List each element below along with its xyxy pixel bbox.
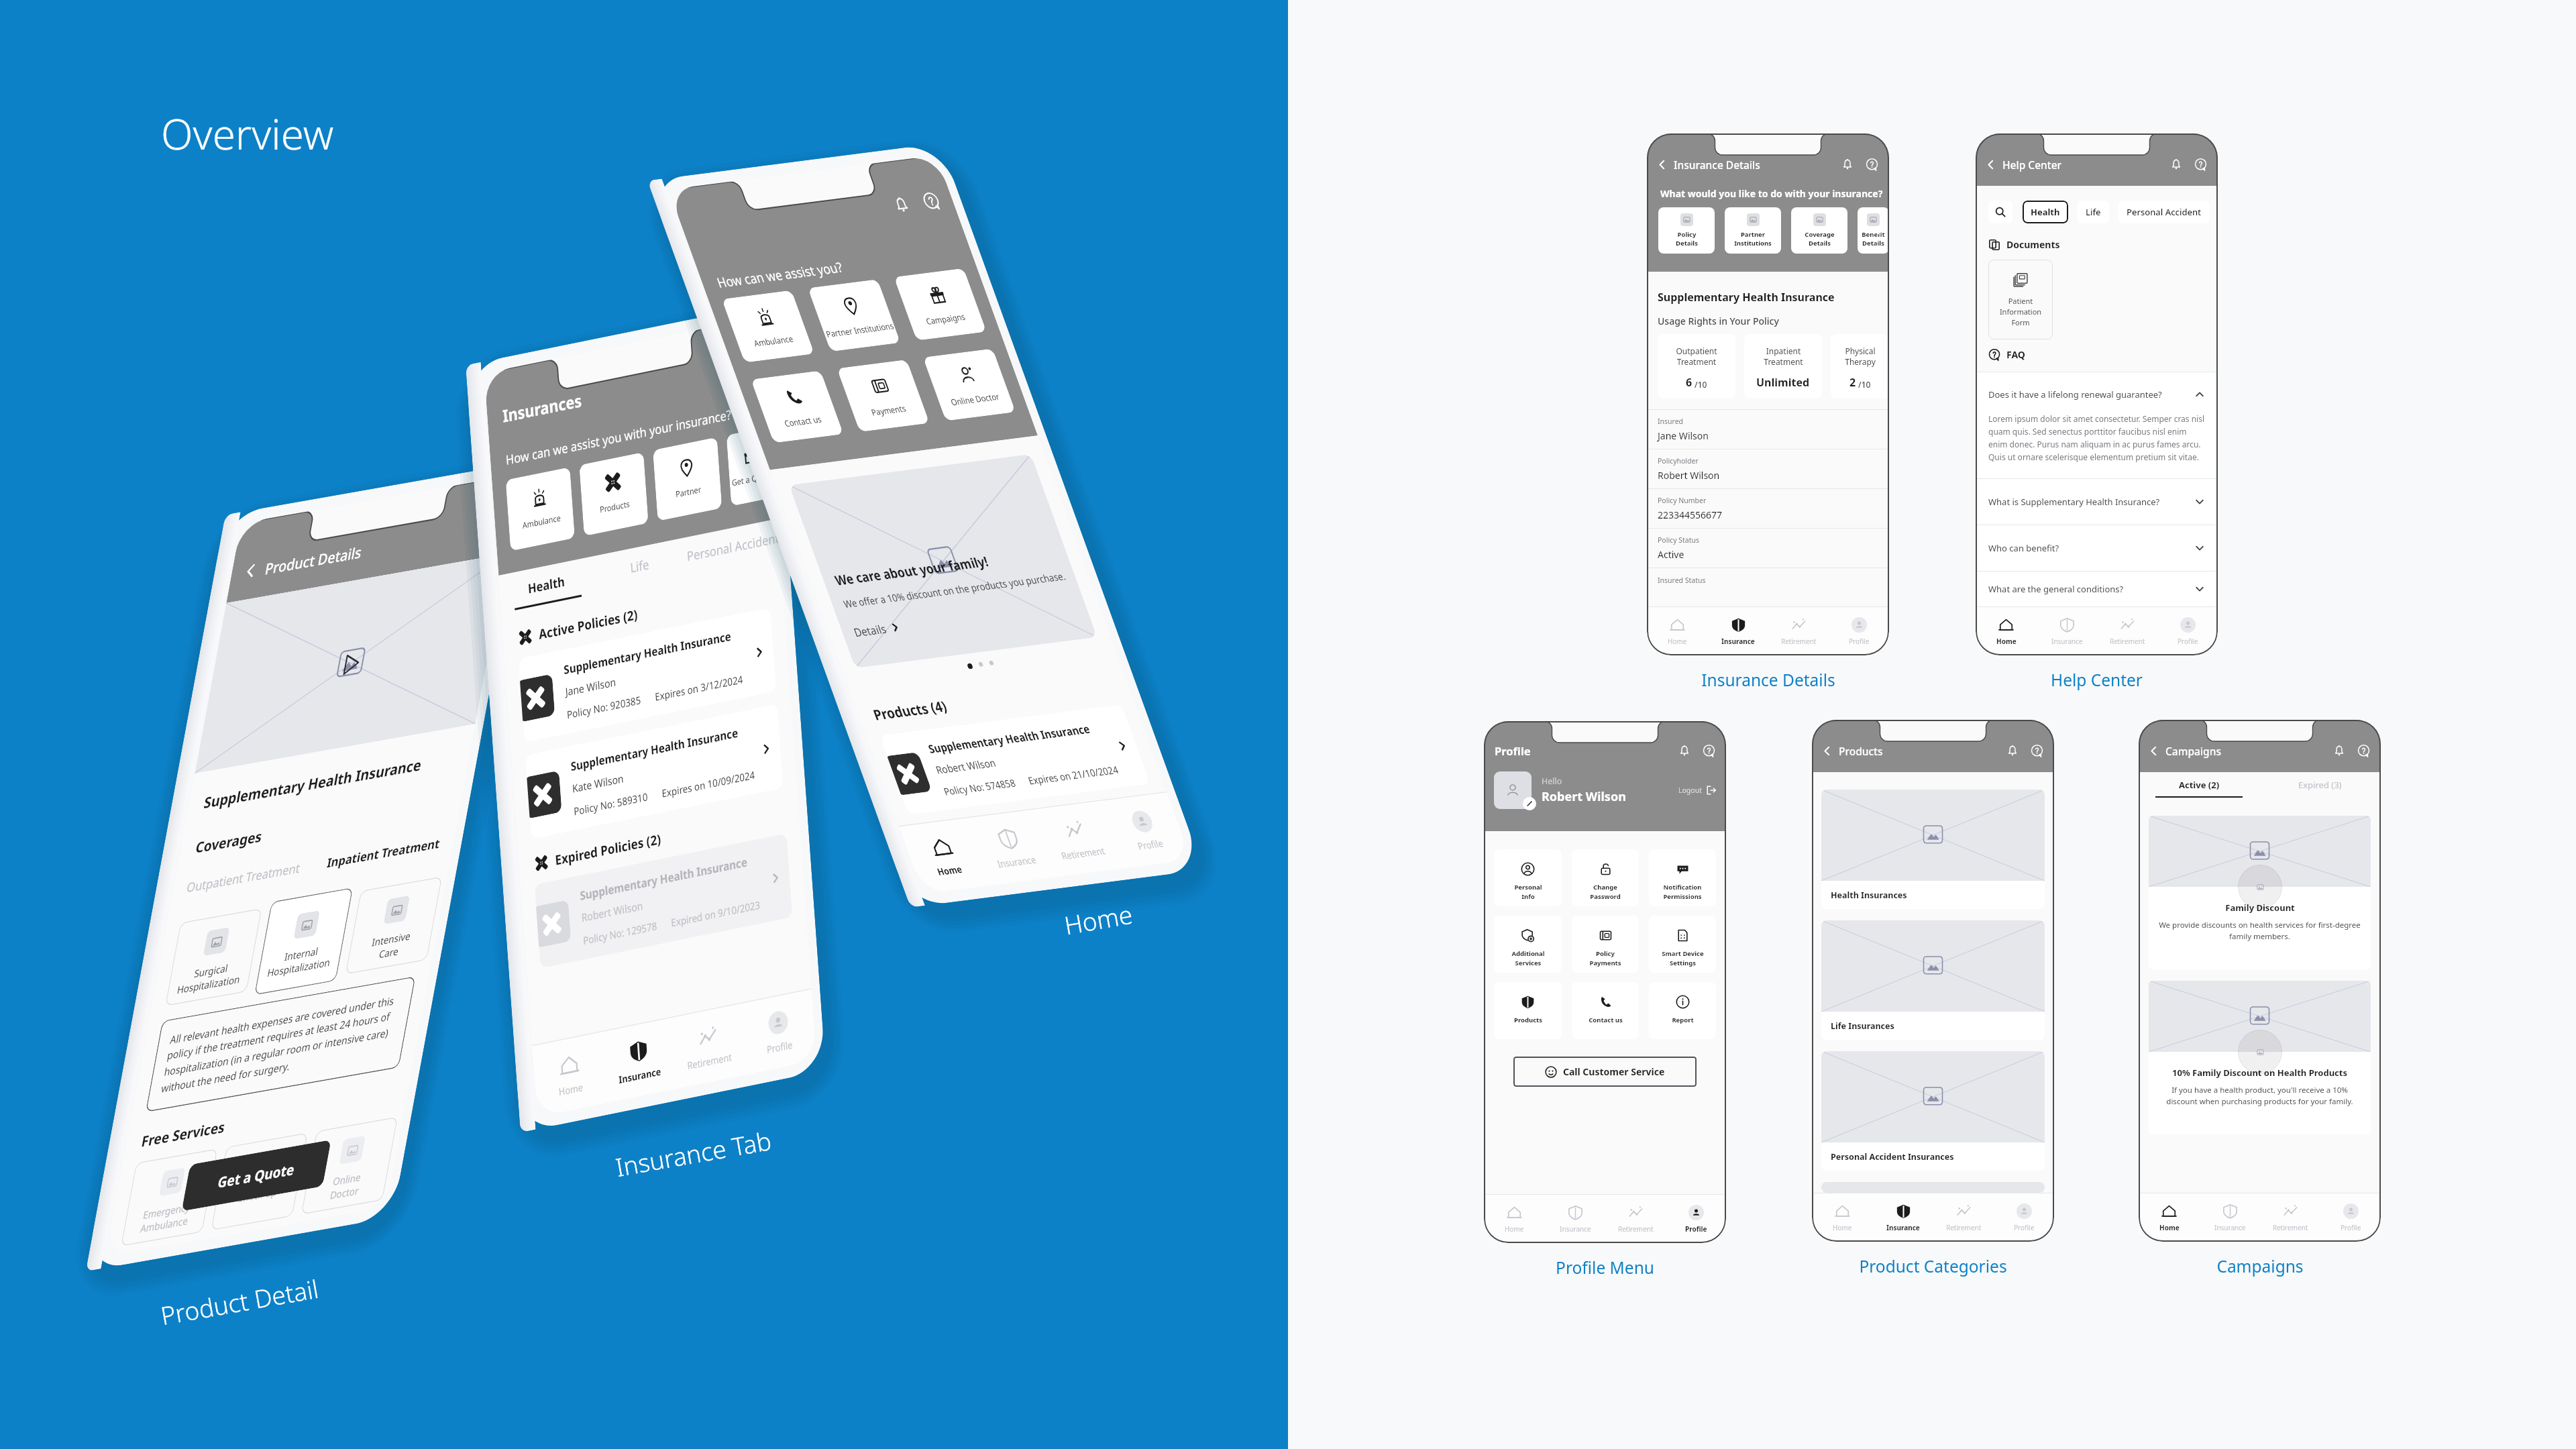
button[interactable]: Products xyxy=(563,438,665,551)
button[interactable]: Notifications xyxy=(2331,743,2347,759)
button[interactable]: Insurance xyxy=(1545,1195,1605,1243)
button[interactable]: Profile xyxy=(2320,1193,2381,1242)
button[interactable]: Outpatient Treatment xyxy=(1658,334,1735,398)
button[interactable]: Expired (3) xyxy=(2259,772,2381,806)
button[interactable]: Retirement xyxy=(1605,1195,1666,1243)
button[interactable]: Personal Accident Insurances xyxy=(1821,1051,2045,1171)
button[interactable]: Health xyxy=(2023,201,2068,223)
button[interactable]: Back xyxy=(2146,743,2161,758)
button[interactable]: Notification Permissions xyxy=(1649,849,1716,906)
button[interactable]: Ambulance xyxy=(489,453,591,566)
button[interactable]: 10% Family Discount on Health Products xyxy=(2149,981,2371,1134)
button[interactable]: Additional Services xyxy=(1494,916,1562,973)
button[interactable]: Partner Institutions xyxy=(636,423,739,536)
button[interactable]: Partner Institutions xyxy=(1725,207,1781,254)
button[interactable]: Change Password xyxy=(1572,849,1639,906)
button[interactable]: Insurance xyxy=(2037,607,2097,655)
button[interactable]: Profile xyxy=(1994,1193,2054,1242)
button[interactable]: Report xyxy=(1649,982,1716,1039)
button[interactable]: Supplementary Health Insurance xyxy=(859,606,1171,913)
button[interactable]: Products xyxy=(1494,982,1562,1039)
button[interactable]: Policy Status xyxy=(1647,529,1889,568)
button[interactable]: Policyholder xyxy=(1647,449,1889,488)
button[interactable]: Back xyxy=(232,550,269,591)
button[interactable]: Insured xyxy=(1647,410,1889,449)
button[interactable]: Family Discount xyxy=(2149,816,2371,969)
button[interactable]: Back xyxy=(1654,157,1669,172)
button[interactable]: Profile xyxy=(1666,1195,1726,1243)
button[interactable]: Payments xyxy=(820,331,946,460)
button[interactable]: Campaigns xyxy=(877,240,1003,369)
button[interactable]: Supplementary Health Insurance xyxy=(499,551,796,799)
button[interactable]: Outpatient Treatment xyxy=(158,789,329,964)
button[interactable]: Insurance xyxy=(585,1002,693,1119)
button[interactable]: Inpatient Treatment xyxy=(298,764,469,940)
button[interactable]: Patient Information Form xyxy=(1988,260,2053,339)
button[interactable]: Retirement xyxy=(1015,774,1142,904)
button[interactable]: Policy Details xyxy=(1658,207,1715,254)
button[interactable]: Home xyxy=(1812,1193,1873,1242)
button[interactable]: Check-up xyxy=(182,1099,337,1264)
button[interactable]: Supplementary Health Insurance xyxy=(515,777,812,1025)
button[interactable]: Notifications xyxy=(1839,156,1856,172)
button[interactable]: Profile xyxy=(2157,607,2218,655)
button[interactable]: Retirement xyxy=(2097,607,2157,655)
button[interactable]: Online Doctor xyxy=(272,1083,427,1248)
button[interactable]: Ambulance xyxy=(705,262,831,391)
button[interactable]: What are the general conditions? xyxy=(1976,572,2218,606)
button[interactable]: Back xyxy=(1983,157,1998,172)
button[interactable]: Notifications xyxy=(2004,743,2021,759)
button[interactable]: Profile xyxy=(1082,765,1209,896)
button[interactable]: Home xyxy=(516,1016,623,1133)
button[interactable]: Retirement xyxy=(1933,1193,1994,1242)
button[interactable]: Profile xyxy=(725,974,833,1090)
button[interactable]: Active (2) xyxy=(2139,772,2259,806)
button[interactable]: Health Insurances xyxy=(1821,790,2045,909)
button[interactable]: Surgical Hospitalization xyxy=(136,874,291,1040)
button[interactable]: Internal Hospitalization xyxy=(222,854,386,1029)
button[interactable]: Notifications xyxy=(470,506,511,550)
button[interactable]: Insurance xyxy=(1873,1193,1933,1242)
button[interactable]: Personal Accident xyxy=(2118,201,2210,223)
button[interactable]: Notifications xyxy=(882,184,921,225)
button[interactable]: Insurance xyxy=(948,783,1074,913)
button[interactable]: Coverage Details xyxy=(1791,207,1847,254)
button[interactable]: Contact us xyxy=(734,342,860,472)
button[interactable]: Insurance xyxy=(1708,607,1768,655)
button[interactable]: Help xyxy=(1864,156,1880,172)
button[interactable]: Help xyxy=(2192,156,2208,172)
button[interactable]: Partner Institutions xyxy=(791,251,917,380)
button[interactable]: Personal Accident xyxy=(675,498,790,600)
button[interactable]: Contact us xyxy=(1572,982,1639,1039)
button[interactable]: Notifications xyxy=(726,348,759,385)
button[interactable]: Logout xyxy=(1678,785,1717,796)
button[interactable]: Intensive Care xyxy=(316,843,471,1008)
button[interactable]: What is Supplementary Health Insurance? xyxy=(1976,479,2218,525)
button[interactable]: Home xyxy=(1647,607,1708,655)
button[interactable]: Retirement xyxy=(2260,1193,2320,1242)
button[interactable]: Retirement xyxy=(1768,607,1829,655)
button[interactable]: Physical Therapy xyxy=(1831,334,1889,398)
button[interactable]: Smart Device Settings xyxy=(1649,916,1716,973)
button[interactable]: Home xyxy=(2139,1193,2200,1242)
button[interactable]: Health xyxy=(489,536,604,638)
button[interactable]: Help xyxy=(2029,743,2045,759)
button[interactable]: Help xyxy=(1701,743,1717,759)
button[interactable]: Personal Info xyxy=(1494,849,1562,906)
button[interactable]: Policy Number xyxy=(1647,489,1889,528)
button[interactable]: Emergency Ambulance xyxy=(92,1115,247,1280)
button[interactable]: Notifications xyxy=(2168,156,2184,172)
button[interactable]: Help xyxy=(911,181,951,221)
button[interactable]: Call Customer Service xyxy=(1513,1057,1697,1087)
button[interactable]: Notifications xyxy=(1676,743,1693,759)
button[interactable]: Who can benefit? xyxy=(1976,525,2218,571)
button[interactable]: Benefit Details xyxy=(1858,207,1889,254)
button[interactable]: Home xyxy=(881,791,1008,921)
button[interactable]: Inpatient Treatment xyxy=(1744,334,1822,398)
button[interactable]: Back xyxy=(1819,743,1834,758)
button[interactable]: Get a Quote xyxy=(710,416,793,516)
button[interactable]: Life Insurances xyxy=(1821,920,2045,1040)
button[interactable]: Home xyxy=(1976,607,2037,655)
button[interactable]: Life xyxy=(582,517,697,619)
button[interactable]: Retirement xyxy=(654,988,763,1105)
